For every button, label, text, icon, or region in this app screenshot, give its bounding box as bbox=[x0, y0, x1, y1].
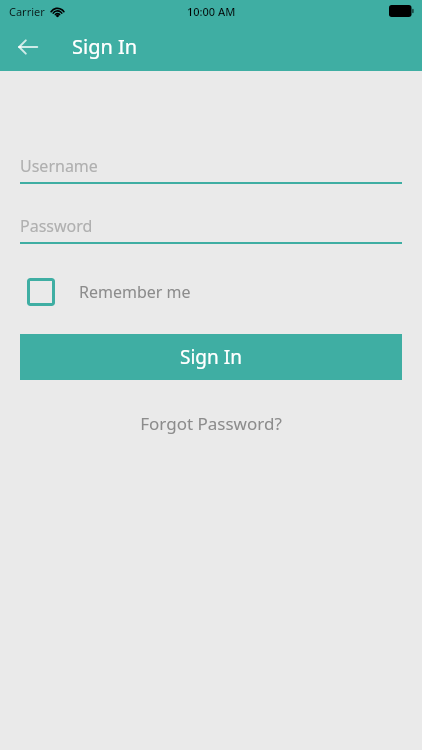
button[interactable]: Password bbox=[20, 209, 402, 244]
staticText: 10:00 AM bbox=[187, 4, 236, 19]
button[interactable]: Username bbox=[20, 149, 402, 184]
staticText: Sign In bbox=[72, 33, 138, 60]
staticText: Carrier bbox=[9, 4, 45, 19]
button[interactable]: Sign In bbox=[20, 334, 402, 380]
staticText: Sign In bbox=[180, 344, 242, 370]
staticText: Remember me bbox=[79, 281, 191, 303]
staticText: Username bbox=[20, 155, 98, 177]
button[interactable]: Remember me bbox=[27, 275, 191, 309]
staticText: Password bbox=[20, 215, 93, 237]
button[interactable]: Forgot Password? bbox=[128, 406, 294, 441]
button[interactable]: Back bbox=[8, 27, 48, 67]
